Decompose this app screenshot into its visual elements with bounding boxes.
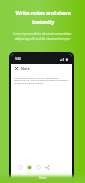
staticText: Write notes and share instantly (15, 9, 71, 26)
staticText: Done (39, 176, 47, 180)
staticText: Note (21, 66, 30, 71)
staticText: Lorem ipsum dolor sit amet consectetur a… (13, 32, 72, 41)
staticText: 9:30 (15, 57, 22, 61)
button[interactable]: Undo (18, 165, 23, 170)
button[interactable]: Highlight (27, 165, 32, 170)
button[interactable]: Image (36, 165, 41, 170)
button[interactable]: Share (45, 165, 50, 170)
staticText: Lorem ipsum dolor sit amet, consectetur … (14, 76, 70, 85)
button[interactable]: Close (14, 66, 19, 71)
